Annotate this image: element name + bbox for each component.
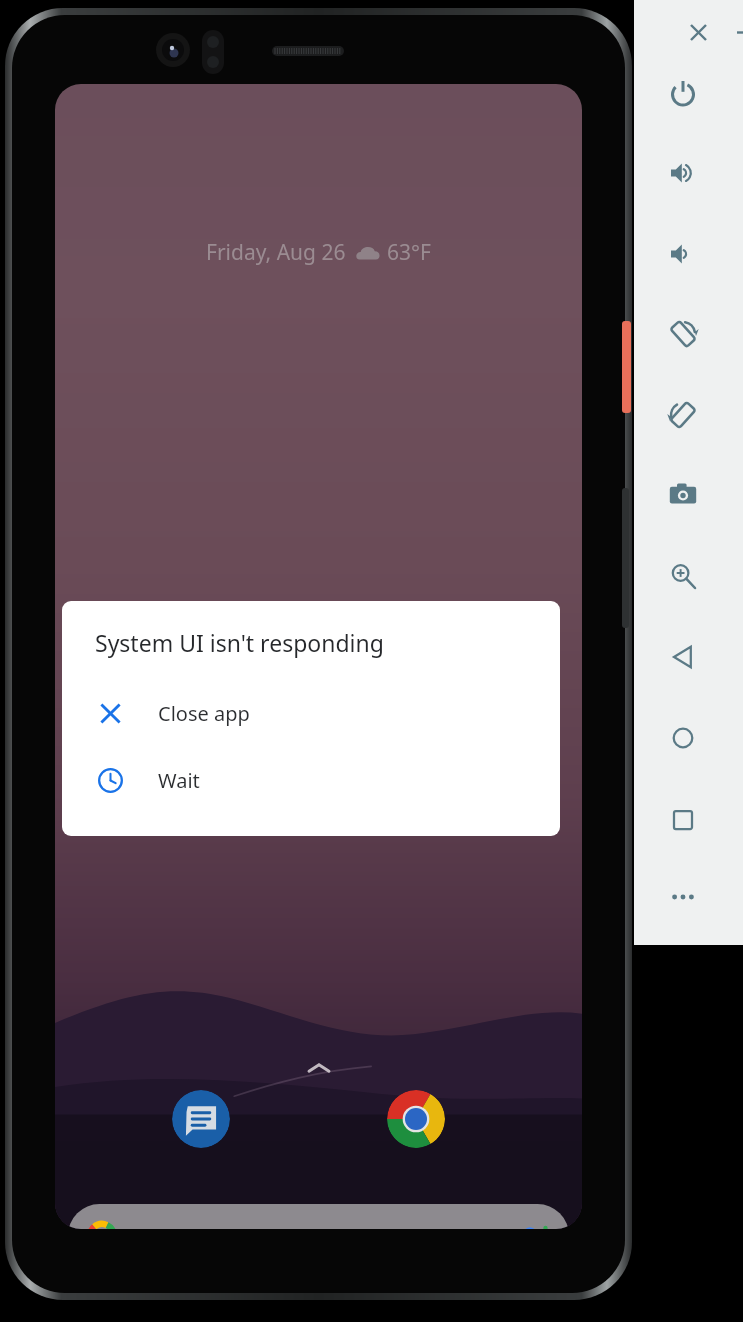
button[interactable]: Open app drawer [302, 1051, 336, 1085]
staticText: Wait [158, 767, 200, 794]
button[interactable]: Close [680, 14, 716, 50]
staticText: Close app [158, 700, 250, 727]
button[interactable]: Wait [62, 747, 560, 814]
button[interactable]: Friday, Aug 26 [200, 236, 437, 269]
button[interactable]: Volume down [660, 231, 706, 277]
other: Power button [622, 321, 631, 413]
button[interactable]: Volume up [660, 150, 706, 196]
button[interactable]: More [660, 874, 706, 920]
button[interactable]: Close app [62, 680, 560, 747]
staticText: 63°F [387, 238, 431, 267]
button[interactable]: Power [660, 70, 706, 116]
button[interactable]: Home [660, 715, 706, 761]
button[interactable]: Rotate left [660, 311, 706, 357]
button[interactable]: Messages [172, 1090, 230, 1148]
staticText: System UI isn't responding [95, 627, 384, 658]
button[interactable]: Take screenshot [660, 471, 706, 517]
button[interactable]: Overview [660, 797, 706, 843]
button[interactable] [68, 1204, 569, 1229]
staticText: Friday, Aug 26 [206, 238, 346, 267]
button[interactable]: Chrome [387, 1090, 445, 1148]
button[interactable]: Zoom [660, 553, 706, 599]
button[interactable]: Minimize [726, 14, 743, 50]
button[interactable]: Rotate right [660, 392, 706, 438]
button[interactable]: Back [660, 634, 706, 680]
